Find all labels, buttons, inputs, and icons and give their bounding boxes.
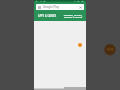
staticText: APPS & GAMES [38,14,57,18]
button[interactable] [36,4,84,10]
button[interactable] [60,10,86,20]
staticText: Google Play [43,5,60,9]
button[interactable]: Add [78,43,82,47]
other: Clear [79,6,82,9]
staticText: BOOKS & MORE [61,15,85,18]
button[interactable] [34,10,60,20]
staticText: MOVIES, MUSIC, [61,13,85,16]
